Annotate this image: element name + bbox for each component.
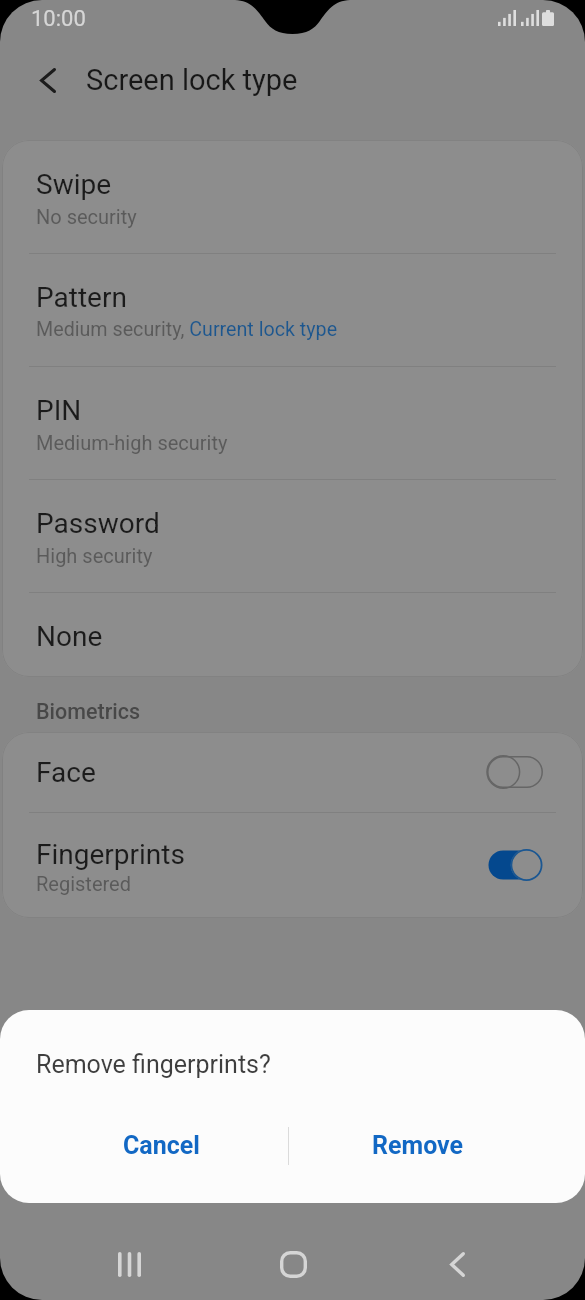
button[interactable]: Remove bbox=[289, 1109, 547, 1181]
staticText: Swipe bbox=[36, 168, 112, 201]
button[interactable]: Recent apps bbox=[105, 1240, 153, 1288]
button[interactable]: Home bbox=[269, 1240, 317, 1288]
staticText: No security bbox=[36, 205, 137, 228]
staticText: Pattern bbox=[36, 281, 127, 314]
staticText: Medium security, Current lock type bbox=[36, 318, 338, 341]
staticText: Screen lock type bbox=[86, 63, 298, 97]
staticText: Remove bbox=[372, 1131, 464, 1160]
staticText: 10:00 bbox=[31, 6, 86, 32]
button[interactable]: Navigate up bbox=[24, 56, 72, 104]
button[interactable] bbox=[2, 479, 583, 592]
staticText: Biometrics bbox=[36, 699, 141, 724]
staticText: Cancel bbox=[123, 1131, 200, 1160]
staticText: Password bbox=[36, 507, 160, 540]
staticText: Registered bbox=[36, 872, 131, 895]
staticText: PIN bbox=[36, 394, 82, 427]
button[interactable] bbox=[2, 732, 583, 812]
button[interactable]: Back bbox=[433, 1240, 481, 1288]
button[interactable] bbox=[2, 813, 583, 918]
button[interactable] bbox=[2, 140, 583, 253]
staticText: Remove fingerprints? bbox=[36, 1050, 271, 1079]
button[interactable]: Turn off bbox=[487, 849, 543, 881]
staticText: Fingerprints bbox=[36, 838, 185, 871]
staticText: None bbox=[36, 620, 103, 653]
button[interactable]: Cancel bbox=[28, 1109, 294, 1181]
button[interactable] bbox=[2, 366, 583, 479]
button[interactable]: Turn on bbox=[487, 756, 543, 788]
button[interactable] bbox=[2, 253, 583, 366]
staticText: Face bbox=[36, 756, 96, 789]
staticText: High security bbox=[36, 544, 153, 567]
button[interactable] bbox=[2, 592, 583, 677]
staticText: Medium-high security bbox=[36, 431, 228, 454]
